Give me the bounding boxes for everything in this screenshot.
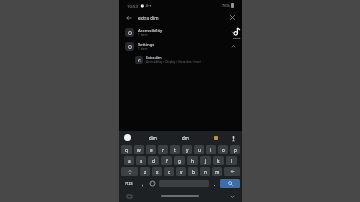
staticText: q [125, 147, 128, 153]
button[interactable]: Emoji [147, 178, 158, 189]
staticText: b [192, 169, 195, 175]
staticText: h [191, 158, 194, 164]
button[interactable]: Shift [121, 167, 138, 176]
button[interactable]: x [152, 167, 162, 176]
button[interactable]: Back [123, 12, 134, 23]
staticText: e [150, 147, 153, 153]
button[interactable]: Switch keyboard [125, 192, 133, 200]
button[interactable]: Accessibility [119, 25, 242, 39]
staticText: a [128, 158, 131, 164]
staticText: Extra dim [146, 55, 162, 60]
staticText: dm [182, 135, 189, 141]
staticText: n [204, 169, 207, 175]
staticText: , [142, 181, 144, 187]
button[interactable]: dim [136, 131, 169, 144]
staticText: y [186, 147, 189, 153]
staticText: s [140, 158, 143, 164]
button[interactable]: Settings [119, 39, 242, 53]
staticText: extra dim [138, 15, 159, 21]
button[interactable]: e [146, 145, 156, 154]
staticText: Settings [138, 41, 155, 47]
button[interactable]: o [218, 145, 228, 154]
staticText: 76% [222, 3, 230, 8]
button[interactable]: Search [220, 179, 240, 188]
button[interactable]: n [200, 167, 210, 176]
button[interactable]: p [230, 145, 240, 154]
button[interactable]: Hide keyboard [228, 192, 236, 200]
button[interactable]: l [226, 156, 237, 165]
button[interactable]: s [136, 156, 146, 165]
staticText: r [162, 147, 164, 153]
staticText: u [198, 147, 201, 153]
staticText: x [156, 169, 159, 175]
staticText: g [178, 158, 181, 164]
staticText: t [174, 147, 176, 153]
button[interactable]: Google [124, 134, 131, 141]
button[interactable]: g [174, 156, 185, 165]
button[interactable]: Voice input [229, 134, 237, 142]
staticText: j [205, 158, 207, 164]
button[interactable]: f [161, 156, 172, 165]
button[interactable]: Clear search [227, 12, 238, 23]
staticText: d [152, 158, 155, 164]
button[interactable]: extra dim [138, 11, 227, 24]
staticText: ⏱ ⚙ ▾ [140, 3, 152, 8]
button[interactable]: z [140, 167, 150, 176]
button[interactable]: y [182, 145, 192, 154]
staticText: k [217, 158, 220, 164]
button[interactable]: d [148, 156, 159, 165]
staticText: p [234, 147, 237, 153]
staticText: . [214, 181, 216, 187]
button[interactable]: v [176, 167, 186, 176]
button[interactable]: ?123 [120, 178, 138, 189]
button[interactable]: t [170, 145, 180, 154]
button[interactable]: Extra dim [119, 53, 242, 66]
staticText: 1 item [138, 33, 148, 37]
staticText: m [215, 169, 220, 175]
staticText: c [168, 169, 171, 175]
staticText: i [210, 147, 212, 153]
staticText: Accessibility [138, 27, 163, 33]
button[interactable]: a [124, 156, 134, 165]
button[interactable]: Clipboard [202, 131, 229, 144]
staticText: 10:53 [127, 3, 138, 9]
button[interactable]: b [188, 167, 198, 176]
staticText: Accessibility > Display > Extra dim > le… [146, 60, 201, 64]
staticText: f [166, 158, 168, 164]
button[interactable]: Backspace [224, 167, 240, 176]
button[interactable]: c [164, 167, 174, 176]
button[interactable]: dm [169, 131, 202, 144]
button[interactable]: i [206, 145, 216, 154]
staticText: w [137, 147, 141, 153]
staticText: o [222, 147, 225, 153]
button[interactable]: k [213, 156, 224, 165]
staticText: ?123 [125, 181, 133, 186]
button[interactable]: q [121, 145, 132, 154]
button[interactable]: h [187, 156, 198, 165]
button[interactable]: , [138, 178, 147, 189]
staticText: dim [149, 135, 157, 141]
button[interactable]: r [158, 145, 168, 154]
staticText: TikTok [233, 36, 241, 39]
staticText: z [144, 169, 147, 175]
button[interactable]: . [210, 178, 219, 189]
button[interactable]: u [194, 145, 204, 154]
staticText: l [231, 158, 233, 164]
button[interactable]: j [200, 156, 211, 165]
staticText: v [180, 169, 183, 175]
button[interactable]: m [212, 167, 222, 176]
button[interactable]: w [134, 145, 144, 154]
staticText: 1 item [138, 47, 148, 51]
